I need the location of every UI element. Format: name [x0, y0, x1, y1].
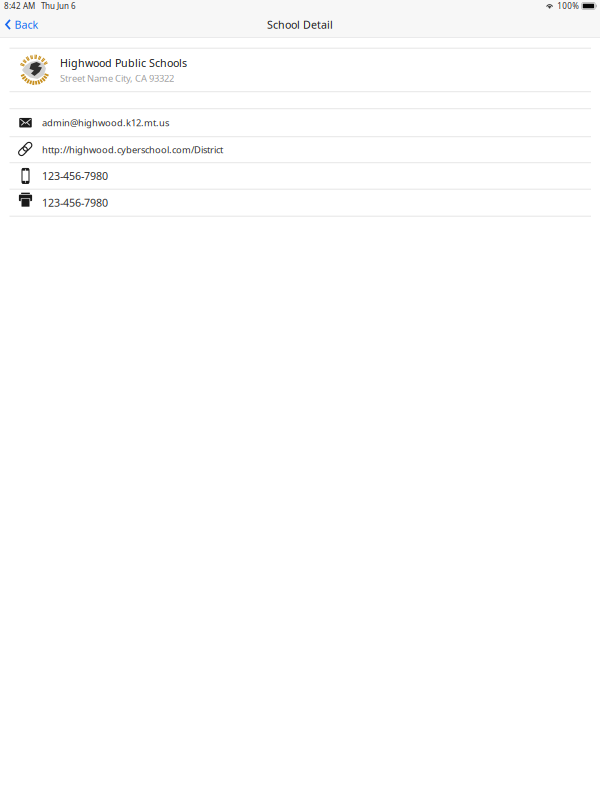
button[interactable]: http://highwood.cyberschool.com/District: [0, 137, 600, 162]
staticText: http://highwood.cyberschool.com/District: [42, 143, 223, 156]
button[interactable]: Back: [0, 12, 46, 37]
staticText: Back: [14, 17, 38, 32]
button[interactable]: 123-456-7980: [0, 163, 600, 189]
staticText: 100%: [557, 1, 579, 11]
button[interactable]: 123-456-7980: [0, 190, 600, 216]
staticText: 123-456-7980: [42, 196, 108, 210]
staticText: School Detail: [267, 17, 333, 32]
staticText: admin@highwood.k12.mt.us: [42, 116, 169, 129]
button[interactable]: Highwood Public Schools: [0, 49, 600, 91]
staticText: 8:42 AM: [4, 1, 35, 11]
staticText: Highwood Public Schools: [60, 56, 187, 70]
staticText: Street Name City, CA 93322: [60, 72, 174, 84]
staticText: 123-456-7980: [42, 169, 108, 183]
staticText: Thu Jun 6: [41, 1, 76, 11]
button[interactable]: admin@highwood.k12.mt.us: [0, 109, 600, 136]
